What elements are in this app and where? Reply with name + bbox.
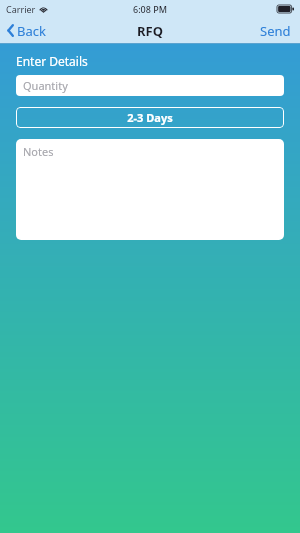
staticText: 6:08 PM bbox=[133, 3, 167, 15]
staticText: Carrier bbox=[6, 3, 36, 15]
staticText: Quantity bbox=[23, 78, 68, 93]
staticText: 2-3 Days bbox=[127, 110, 173, 125]
staticText: Back bbox=[17, 22, 46, 40]
button[interactable]: Back bbox=[0, 18, 56, 43]
staticText: RFQ bbox=[137, 22, 163, 40]
button[interactable]: 2-3 Days bbox=[16, 107, 284, 128]
button[interactable]: Send bbox=[251, 18, 300, 43]
staticText: Notes bbox=[23, 144, 54, 159]
staticText: Send bbox=[260, 22, 291, 40]
button[interactable]: Notes bbox=[16, 139, 284, 240]
staticText: Enter Details bbox=[16, 53, 88, 69]
button[interactable]: Quantity bbox=[16, 75, 284, 96]
